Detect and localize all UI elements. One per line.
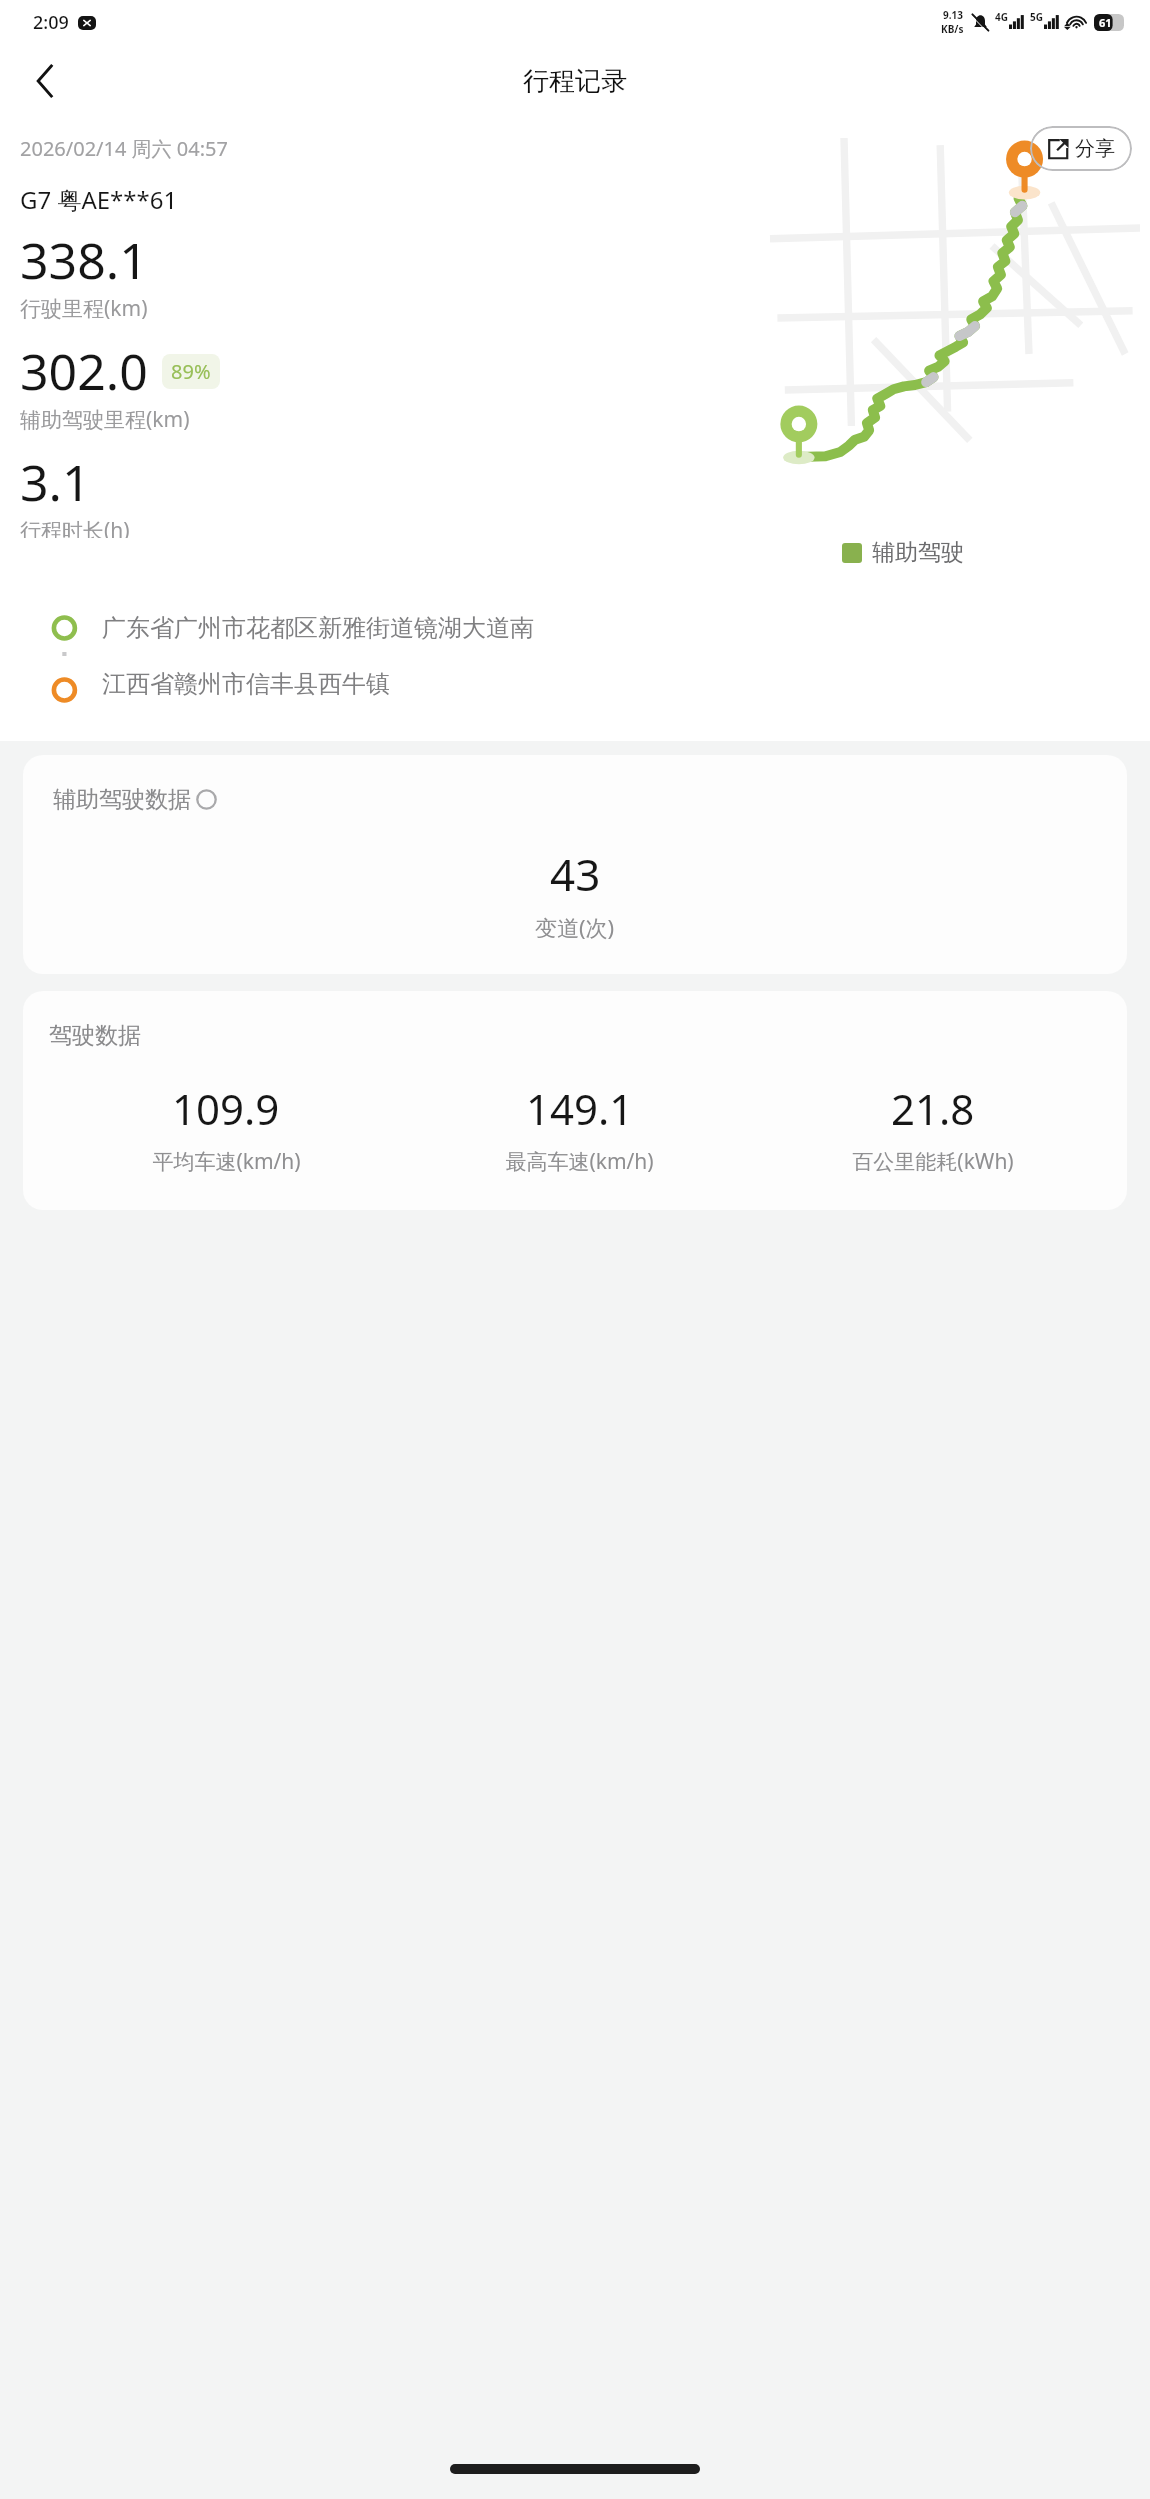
staticText: 辅助驾驶 xyxy=(872,538,964,567)
staticText: 43 xyxy=(550,844,601,904)
staticText: 变道(次) xyxy=(535,912,615,942)
staticText: 行程记录 xyxy=(523,65,627,98)
staticText: 平均车速(km/h) xyxy=(152,1147,301,1176)
staticText: 驾驶数据 xyxy=(49,1021,141,1050)
button[interactable]: 驾驶数据 xyxy=(23,991,1127,1210)
staticText: 4G xyxy=(995,10,1008,24)
staticText: 9.13 xyxy=(943,8,963,22)
staticText: 61 xyxy=(1099,15,1112,30)
staticText: 行驶里程(km) xyxy=(20,294,148,323)
button[interactable]: 分享 xyxy=(1030,126,1132,171)
staticText: 149.1 xyxy=(526,1080,634,1137)
staticText: 5G xyxy=(1030,10,1043,24)
staticText: 338.1 xyxy=(20,226,148,294)
staticText: 21.8 xyxy=(891,1080,975,1137)
staticText: KB/s xyxy=(941,22,964,36)
staticText: 最高车速(km/h) xyxy=(505,1147,654,1176)
staticText: 3.1 xyxy=(20,448,91,516)
staticText: 广东省广州市花都区新雅街道镜湖大道南 xyxy=(102,613,534,643)
staticText: 百公里能耗(kWh) xyxy=(852,1147,1014,1176)
staticText: G7 粤AE***61 xyxy=(20,183,178,216)
button[interactable]: Back xyxy=(16,52,74,110)
staticText: 2026/02/14 周六 04:57 xyxy=(20,135,228,162)
staticText: 89% xyxy=(171,358,211,385)
staticText: 302.0 xyxy=(20,337,148,405)
staticText: 2:09 xyxy=(33,10,69,35)
staticText: 行程时长(h) xyxy=(20,516,130,538)
staticText: 109.9 xyxy=(172,1080,280,1137)
staticText: 分享 xyxy=(1075,136,1115,161)
button[interactable]: 辅助驾驶数据 xyxy=(23,755,1127,974)
staticText: 江西省赣州市信丰县西牛镇 xyxy=(102,669,390,699)
staticText: 辅助驾驶里程(km) xyxy=(20,405,190,434)
staticText: 辅助驾驶数据 xyxy=(53,785,191,814)
